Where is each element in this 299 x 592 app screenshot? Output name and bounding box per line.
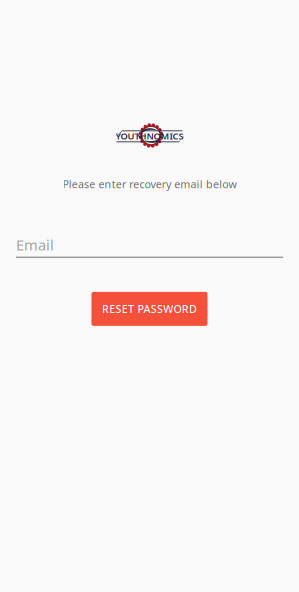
button[interactable]: RESET PASSWORD [91, 292, 207, 326]
staticText: Email [16, 235, 54, 255]
staticText: RESET PASSWORD [102, 302, 197, 316]
staticText: Please enter recovery email below [63, 177, 236, 191]
button[interactable]: Email [16, 235, 283, 258]
staticText: YOUTHNOMICS [115, 130, 183, 142]
